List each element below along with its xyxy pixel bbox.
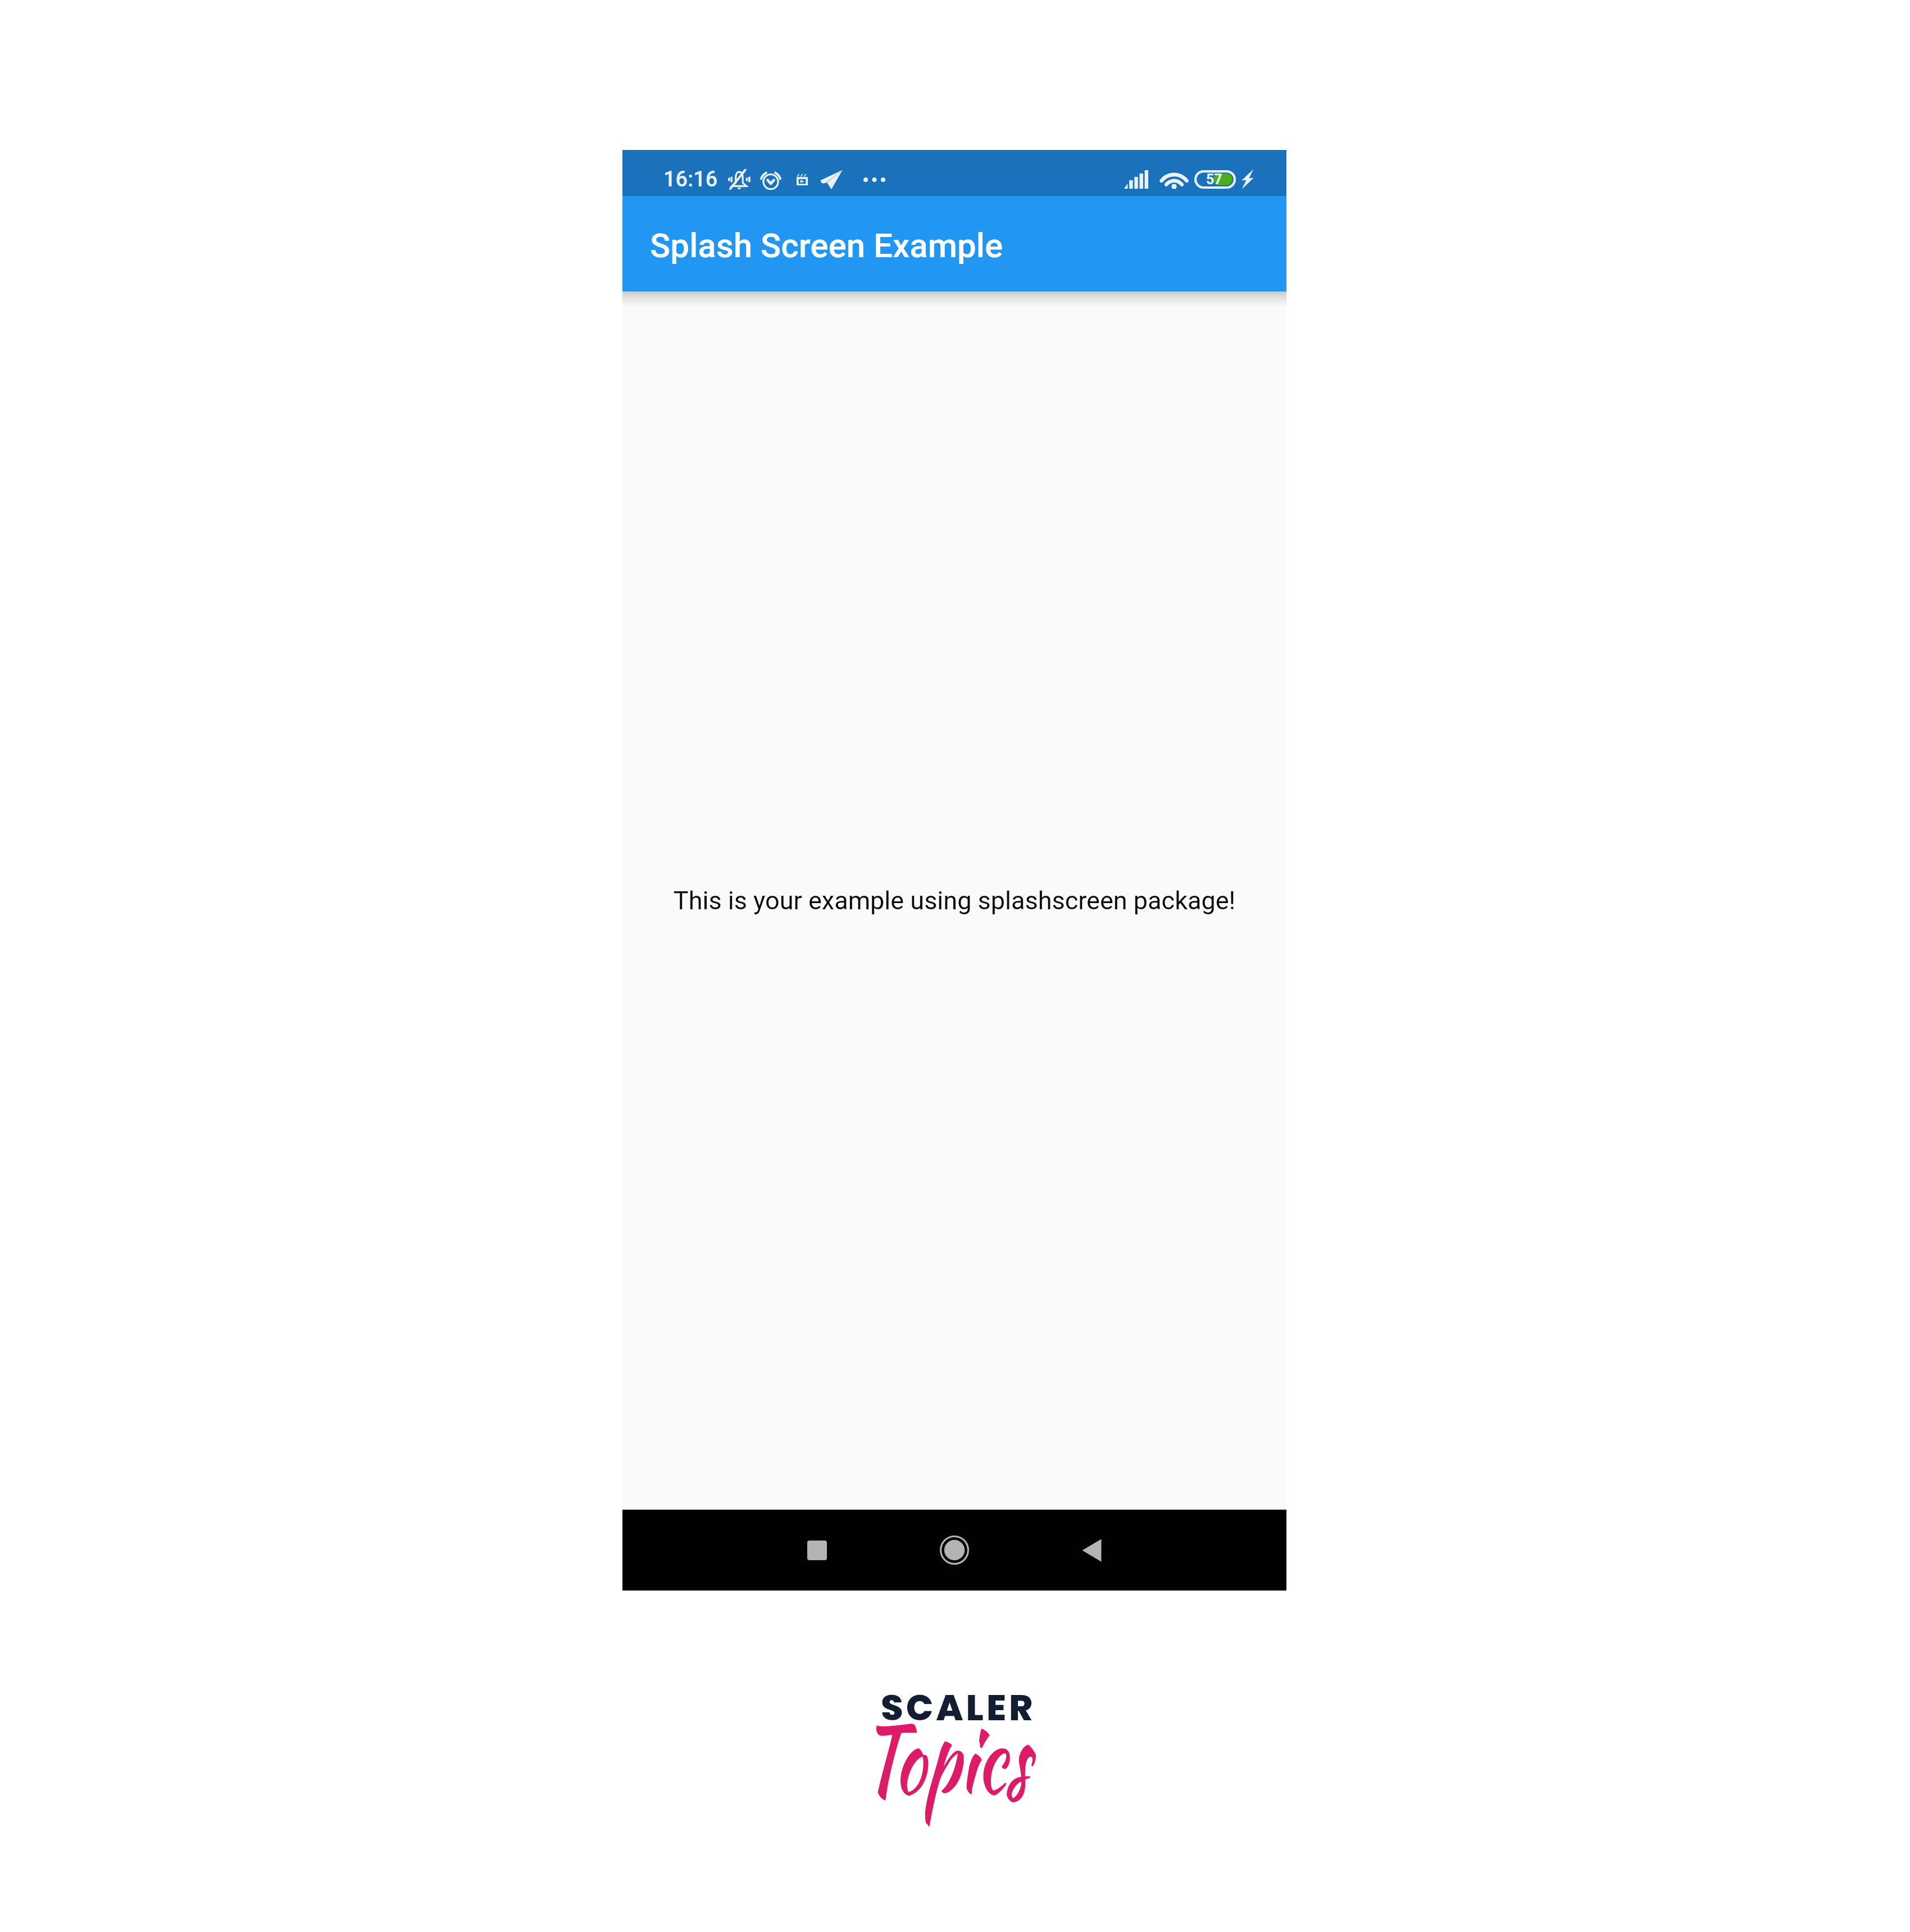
staticText: This is your example using splashscreen … [622, 886, 1286, 915]
staticText: Splash Screen Example [650, 226, 1003, 265]
button[interactable]: Recent apps [780, 1514, 853, 1587]
staticText: 57 [1206, 171, 1222, 188]
staticText: Topics [861, 1692, 1030, 1827]
staticText: SCALER [881, 1683, 1036, 1733]
button[interactable]: Back [1055, 1514, 1128, 1587]
staticText: 16:16 [663, 167, 718, 192]
button[interactable]: Home [918, 1514, 991, 1587]
